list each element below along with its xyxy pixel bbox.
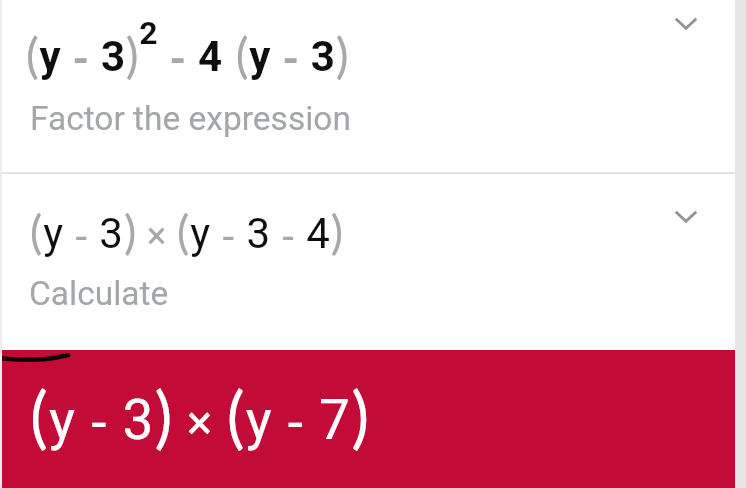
button[interactable]: Expand step bbox=[662, 0, 710, 47]
staticText: (y - 3)2 - 4 (y - 3) bbox=[26, 14, 350, 84]
button[interactable]: Expand step bbox=[662, 192, 710, 240]
staticText: (y - 3) × (y - 3 - 4) bbox=[30, 204, 345, 261]
button[interactable]: (y - 3) × (y - 3 - 4) bbox=[0, 174, 746, 350]
button[interactable]: (y - 3) × (y - 7) bbox=[0, 350, 746, 488]
staticText: Factor the expression bbox=[30, 99, 351, 138]
button[interactable]: (y - 3)2 - 4 (y - 3) bbox=[0, 0, 746, 172]
staticText: (y - 3) × (y - 7) bbox=[30, 375, 371, 455]
staticText: Calculate bbox=[29, 274, 169, 313]
